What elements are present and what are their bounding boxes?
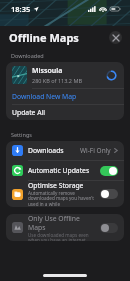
button[interactable]: Pause download [105, 69, 118, 82]
staticText: 18:35 [11, 4, 31, 14]
staticText: Update All [12, 108, 46, 117]
button[interactable]: Close [109, 31, 122, 44]
staticText: Settings [11, 131, 32, 138]
staticText: Offline Maps [9, 30, 79, 45]
staticText: Automatically remove downloaded maps you… [28, 190, 97, 207]
staticText: Optimise Storage [28, 181, 84, 190]
button[interactable]: Missoula [6, 62, 124, 88]
button[interactable]: Toggle on [100, 166, 118, 176]
button[interactable]: Toggle off [100, 189, 118, 199]
button[interactable]: Downloads [6, 141, 124, 160]
staticText: Downloads [28, 146, 80, 155]
button[interactable]: Only Use Offline Maps [6, 214, 124, 241]
staticText: 280 KB of 113.2 MB [32, 77, 82, 84]
staticText: Use downloaded maps even when you have a… [28, 232, 97, 241]
button[interactable]: Automatic Updates [6, 161, 124, 180]
staticText: Automatic Updates [28, 166, 100, 175]
button[interactable]: Optimise Storage [6, 181, 124, 207]
button[interactable]: Update All [6, 105, 124, 120]
staticText: Only Use Offline Maps [28, 214, 97, 232]
staticText: Downloaded [11, 52, 44, 59]
staticText: Wi-Fi Only [80, 146, 111, 155]
button[interactable]: Toggle off [100, 223, 118, 233]
button[interactable]: Download New Map [6, 89, 124, 104]
staticText: Missoula [32, 66, 63, 76]
staticText: Download New Map [12, 92, 77, 101]
